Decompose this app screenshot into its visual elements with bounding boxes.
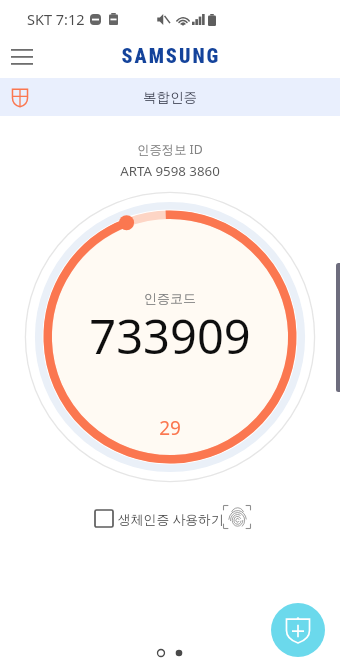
staticText: 29: [20, 415, 320, 441]
staticText: ARTA 9598 3860: [0, 162, 340, 180]
staticText: SAMSUNG: [1, 44, 340, 67]
staticText: 인증정보 ID: [0, 141, 340, 158]
button[interactable]: Add credential: [271, 603, 325, 657]
staticText: 인증코드: [20, 290, 320, 306]
button[interactable]: 생체인증 사용하기: [95, 506, 224, 530]
staticText: 생체인증 사용하기: [118, 510, 224, 527]
button[interactable]: 복합인증: [0, 78, 340, 116]
staticText: 733909: [20, 304, 320, 368]
staticText: SKT 7:12: [27, 9, 85, 29]
button[interactable]: Menu: [5, 44, 38, 68]
button[interactable]: Fingerprint: [223, 505, 251, 529]
staticText: 복합인증: [143, 89, 197, 106]
